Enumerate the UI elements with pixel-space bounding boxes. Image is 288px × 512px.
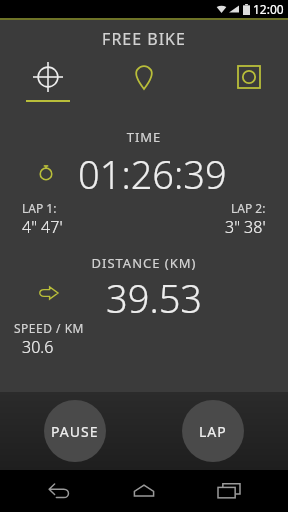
button[interactable]: Home	[132, 482, 156, 500]
staticText: 3" 38'	[225, 216, 266, 238]
staticText: LAP 2:	[231, 200, 266, 216]
button[interactable]: LAP	[182, 400, 244, 462]
staticText: TIME	[0, 128, 288, 146]
staticText: LAP	[199, 422, 227, 441]
staticText: SPEED / KM	[14, 320, 84, 336]
staticText: 4" 47'	[22, 216, 63, 238]
button[interactable]: Back	[48, 480, 70, 502]
button[interactable]: Recent apps	[218, 482, 240, 500]
button[interactable]: PAUSE	[44, 400, 106, 462]
staticText: 30.6	[22, 336, 54, 358]
staticText: DISTANCE (KM)	[0, 254, 288, 272]
staticText: 01:26:39	[78, 148, 227, 192]
button[interactable]: Photo	[238, 66, 260, 88]
staticText: LAP 1:	[22, 200, 57, 216]
staticText: 39.53	[106, 272, 203, 314]
staticText: 12:00	[253, 1, 284, 17]
staticText: PAUSE	[51, 422, 99, 441]
button[interactable]: Target	[20, 60, 76, 106]
staticText: FREE BIKE	[0, 28, 288, 50]
button[interactable]: Location	[135, 66, 153, 90]
